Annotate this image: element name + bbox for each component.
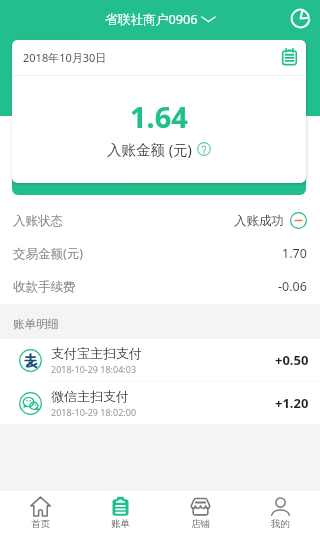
staticText: +1.20 xyxy=(275,394,309,412)
staticText: 省联社商户0906 xyxy=(105,10,198,27)
other: Bill list xyxy=(281,48,298,65)
staticText: 收款手续费 xyxy=(13,279,76,295)
button[interactable]: 首页 xyxy=(0,491,80,533)
staticText: 账单明细 xyxy=(13,317,59,331)
staticText: 首页 xyxy=(31,518,50,530)
staticText: +0.50 xyxy=(275,351,309,369)
button[interactable]: Statistics xyxy=(290,8,311,29)
button[interactable]: 支付宝主扫支付 xyxy=(0,339,320,381)
staticText: -0.06 xyxy=(278,278,307,295)
staticText: 1.64 xyxy=(130,97,188,136)
staticText: 1.70 xyxy=(282,245,307,262)
staticText: 交易金额(元) xyxy=(13,245,84,262)
staticText: 我的 xyxy=(271,518,290,530)
staticText: 2018-10-29 18:02:00 xyxy=(51,406,137,418)
button[interactable]: 收款手续费 xyxy=(0,270,320,303)
button[interactable]: 账单 xyxy=(80,491,160,533)
staticText: 2018-10-29 18:04:03 xyxy=(51,363,137,375)
button[interactable]: 2018年10月30日 xyxy=(12,40,306,75)
button[interactable]: 微信主扫支付 xyxy=(0,382,320,424)
staticText: 微信主扫支付 xyxy=(51,388,129,404)
button[interactable]: 交易金额(元) xyxy=(0,237,320,270)
button[interactable]: 入账状态 xyxy=(0,204,320,237)
other: Help xyxy=(197,142,211,156)
staticText: 入账成功 xyxy=(234,213,284,229)
staticText: 入账状态 xyxy=(13,213,63,229)
button[interactable]: 我的 xyxy=(240,491,320,533)
staticText: 2018年10月30日 xyxy=(23,50,107,65)
button[interactable]: 省联社商户0906 xyxy=(105,10,216,27)
staticText: 入账金额 (元) xyxy=(107,139,192,159)
staticText: 店铺 xyxy=(191,518,210,530)
staticText: 支付宝主扫支付 xyxy=(51,345,142,361)
button[interactable]: 店铺 xyxy=(160,491,240,533)
staticText: 账单 xyxy=(111,518,130,530)
